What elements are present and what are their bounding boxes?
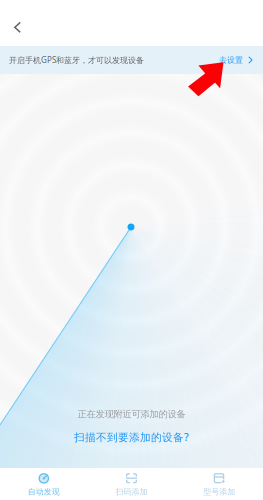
button[interactable]: 型号添加 (175, 468, 263, 500)
button[interactable]: 开启手机GPS和蓝牙，才可以发现设备 (0, 46, 263, 74)
button[interactable]: 返回 (0, 0, 35, 46)
staticText: 去设置 (219, 55, 243, 65)
staticText: 型号添加 (203, 487, 235, 497)
button[interactable]: 自动发现 (0, 468, 88, 500)
button[interactable]: 扫码添加 (88, 468, 175, 500)
staticText: 扫描不到要添加的设备? (74, 430, 189, 444)
staticText: 自动发现 (28, 487, 60, 497)
staticText: 扫码添加 (115, 487, 147, 497)
staticText: 正在发现附近可添加的设备 (77, 408, 185, 420)
staticText: 开启手机GPS和蓝牙，才可以发现设备 (9, 55, 144, 65)
button[interactable]: 扫描不到要添加的设备? (74, 430, 189, 444)
